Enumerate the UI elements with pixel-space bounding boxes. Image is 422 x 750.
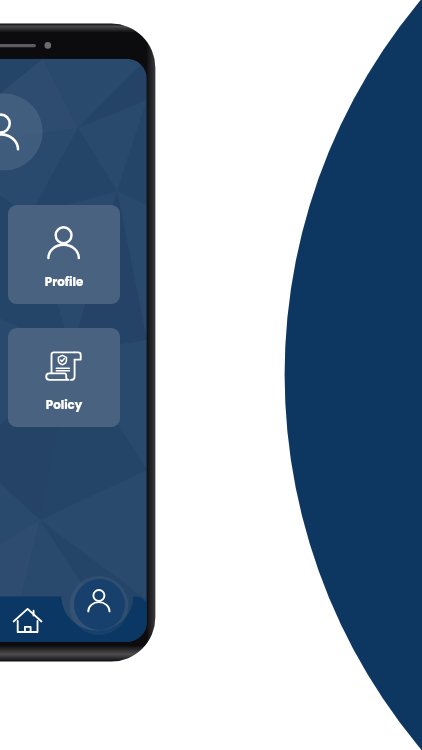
staticText: Profile bbox=[8, 274, 120, 296]
button[interactable]: Profile bbox=[71, 576, 129, 634]
button[interactable]: Policy bbox=[8, 328, 120, 427]
staticText: Policy bbox=[8, 397, 120, 419]
button[interactable]: Home bbox=[6, 598, 50, 642]
button[interactable]: Profile bbox=[8, 205, 120, 304]
